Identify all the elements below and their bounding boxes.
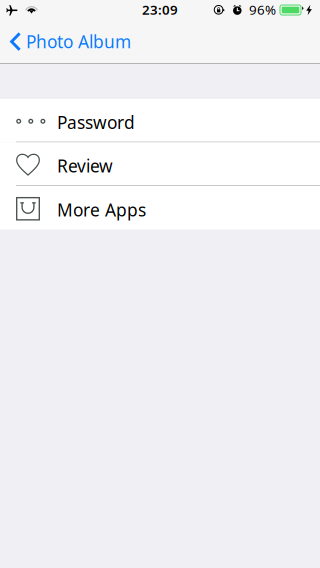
staticText: 96% xyxy=(249,1,276,18)
staticText: Review xyxy=(57,154,113,177)
staticText: More Apps xyxy=(57,198,146,221)
staticText: Photo Album xyxy=(26,30,131,53)
staticText: 23:09 xyxy=(142,1,178,18)
button[interactable]: More Apps xyxy=(0,186,320,229)
button[interactable]: Photo Album xyxy=(0,20,141,63)
staticText: Password xyxy=(57,111,135,134)
button[interactable]: Review xyxy=(0,142,320,186)
button[interactable]: Password xyxy=(0,99,320,142)
